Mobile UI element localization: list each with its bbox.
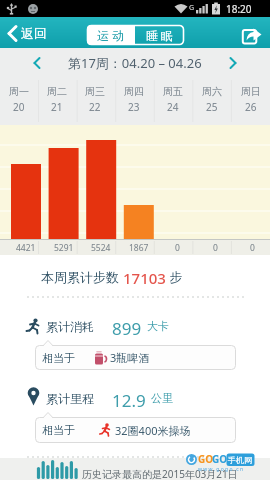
staticText: 12.9 — [112, 389, 146, 407]
staticText: 周三 — [85, 85, 105, 98]
staticText: GO — [212, 452, 228, 466]
staticText: 周二 — [47, 85, 67, 98]
staticText: 周五 — [163, 85, 183, 98]
staticText: 相当于 — [42, 351, 75, 365]
staticText: 1867 — [129, 242, 149, 254]
staticText: GO — [198, 452, 214, 466]
staticText: 18:20 — [226, 2, 252, 16]
staticText: 23 — [128, 100, 140, 114]
staticText: 返回 — [21, 25, 47, 41]
staticText: 0 — [250, 242, 255, 254]
staticText: 手机网 — [228, 455, 252, 465]
staticText: 4421 — [16, 242, 36, 254]
staticText: 17103 — [123, 268, 166, 286]
staticText: 周四 — [124, 85, 144, 98]
button[interactable] — [33, 57, 41, 69]
staticText: 32圈400米操场 — [115, 423, 191, 438]
staticText: 大卡 — [147, 319, 169, 333]
staticText: 累计里程 — [46, 391, 94, 406]
staticText: 周日 — [241, 85, 261, 98]
staticText: 22 — [89, 100, 101, 114]
staticText: 周六 — [202, 85, 222, 98]
staticText: 相当于 — [42, 423, 75, 437]
button[interactable]: 返回 — [6, 22, 47, 44]
staticText: 24 — [167, 100, 179, 114]
staticText: 0 — [213, 242, 218, 254]
button[interactable]: 运 动 — [87, 25, 135, 45]
staticText: 3瓶啤酒 — [110, 350, 150, 365]
button[interactable]: 睡 眠 — [135, 25, 184, 45]
staticText: 周一 — [9, 85, 29, 98]
staticText: w w w . g o g o . c n — [198, 466, 244, 473]
staticText: 累计消耗 — [46, 319, 94, 334]
button[interactable] — [229, 57, 237, 69]
staticText: G — [189, 3, 195, 13]
staticText: 步 — [166, 268, 183, 286]
staticText: 历史记录最高的是2015年03月21日 — [82, 467, 238, 480]
staticText: 899 — [112, 317, 142, 335]
staticText: 运 动 — [97, 27, 125, 43]
button[interactable] — [242, 26, 262, 45]
staticText: 5291 — [54, 242, 74, 254]
staticText: 21 — [51, 100, 63, 114]
staticText: 26 — [245, 100, 257, 114]
staticText: 本周累计步数 — [41, 268, 123, 286]
staticText: 5524 — [91, 242, 111, 254]
staticText: 睡 眠 — [146, 27, 174, 43]
staticText: 0 — [175, 242, 180, 254]
staticText: 第17周：04.20 – 04.26 — [68, 54, 202, 72]
staticText: 20 — [13, 100, 25, 114]
staticText: 公里 — [151, 391, 173, 405]
staticText: 25 — [206, 100, 218, 114]
